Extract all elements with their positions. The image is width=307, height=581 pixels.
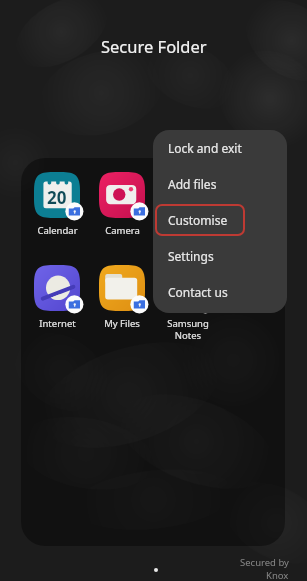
staticText: Camera [105,224,140,237]
staticText: Samsung Notes [167,317,209,342]
staticText: Lock and exit [168,140,242,156]
button[interactable]: My Files [91,265,153,330]
staticText: Settings [168,248,214,264]
button[interactable]: Calendar [26,172,88,237]
staticText: Calendar [37,224,78,237]
button[interactable]: Customise [153,202,287,238]
staticText: 20 [47,186,67,209]
button[interactable]: Lock and exit [153,130,287,166]
staticText: Secure Folder [101,35,207,57]
button[interactable]: Settings [153,238,287,274]
button[interactable]: Add files [153,166,287,202]
button[interactable]: Contact us [153,274,287,309]
button[interactable]: Camera [91,172,153,237]
button[interactable]: Samsung Notes [157,265,219,342]
staticText: Customise [168,212,228,228]
staticText: Knox [266,569,289,581]
staticText: Secured by [240,556,289,569]
staticText: My Files [104,317,140,330]
staticText: Add files [168,176,217,192]
staticText: Internet [39,317,76,330]
staticText: Contact us [168,284,228,300]
button[interactable]: Internet [26,265,88,330]
